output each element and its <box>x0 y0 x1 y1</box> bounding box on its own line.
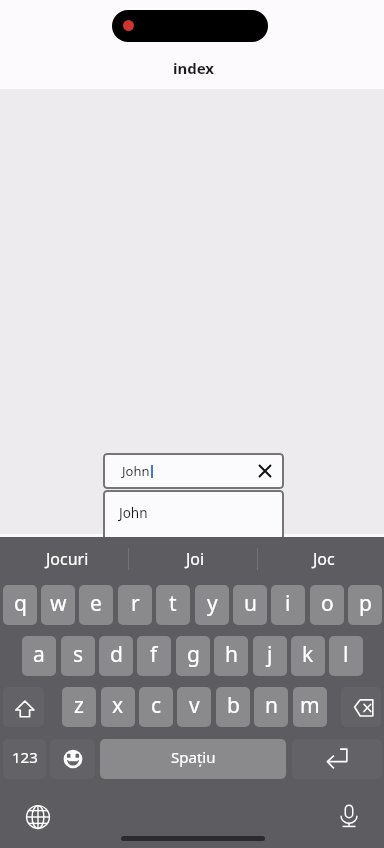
button[interactable]: Change keyboard <box>25 804 50 829</box>
button[interactable]: h <box>214 636 248 676</box>
button[interactable]: p <box>348 585 382 625</box>
staticText: x <box>112 691 124 720</box>
staticText: a <box>33 640 45 669</box>
button[interactable]: s <box>61 636 95 676</box>
button[interactable]: j <box>253 636 287 676</box>
button[interactable]: k <box>291 636 325 676</box>
button[interactable]: g <box>176 636 210 676</box>
staticText: f <box>150 640 158 669</box>
staticText: k <box>302 640 314 669</box>
staticText: h <box>225 640 238 669</box>
button[interactable]: v <box>177 687 211 727</box>
button[interactable]: y <box>195 585 229 625</box>
staticText: d <box>110 640 123 669</box>
button[interactable]: i <box>271 585 305 625</box>
staticText: z <box>74 691 84 720</box>
button[interactable]: n <box>254 687 288 727</box>
button[interactable]: Jocuri <box>0 537 128 582</box>
button[interactable]: Joi <box>128 537 257 582</box>
staticText: m <box>300 691 320 720</box>
staticText: i <box>285 589 291 618</box>
staticText: index <box>173 58 215 78</box>
staticText: y <box>207 589 218 618</box>
staticText: John <box>119 504 148 522</box>
staticText: John <box>122 462 150 480</box>
staticText: Joi <box>186 548 205 570</box>
button[interactable]: q <box>3 585 37 625</box>
staticText: l <box>343 640 349 669</box>
button[interactable]: t <box>156 585 190 625</box>
staticText: 123 <box>12 747 38 767</box>
staticText: t <box>169 589 177 618</box>
button[interactable]: o <box>310 585 344 625</box>
staticText: Spațiu <box>171 747 216 767</box>
staticText: v <box>189 691 200 720</box>
staticText: n <box>265 691 278 720</box>
staticText: b <box>227 691 240 720</box>
button[interactable]: Enter <box>292 739 382 779</box>
button[interactable]: John <box>103 453 284 489</box>
staticText: p <box>359 589 372 618</box>
button[interactable]: m <box>293 687 327 727</box>
button[interactable]: z <box>62 687 96 727</box>
button[interactable]: e <box>79 585 113 625</box>
button[interactable]: Shift <box>3 687 44 727</box>
button[interactable]: Backspace <box>341 687 381 727</box>
button[interactable]: c <box>139 687 173 727</box>
staticText: j <box>267 640 273 669</box>
button[interactable]: u <box>233 585 267 625</box>
button[interactable]: f <box>137 636 171 676</box>
button[interactable]: Clear text <box>254 460 276 482</box>
staticText: c <box>151 691 162 720</box>
button[interactable]: a <box>22 636 56 676</box>
staticText: q <box>14 589 27 618</box>
button[interactable]: x <box>101 687 135 727</box>
staticText: Jocuri <box>46 548 89 570</box>
staticText: Joc <box>313 548 335 570</box>
button[interactable]: Spațiu <box>100 739 286 779</box>
button[interactable]: d <box>99 636 133 676</box>
staticText: o <box>321 589 334 618</box>
button[interactable]: Joc <box>257 537 384 582</box>
button[interactable]: b <box>216 687 250 727</box>
button[interactable]: Emoji <box>50 739 95 779</box>
button[interactable]: 123 <box>3 739 46 779</box>
staticText: r <box>131 589 140 618</box>
staticText: u <box>244 589 257 618</box>
staticText: w <box>50 589 67 618</box>
staticText: s <box>73 640 84 669</box>
button[interactable]: Voice input <box>336 803 361 828</box>
button[interactable]: r <box>118 585 152 625</box>
button[interactable]: l <box>329 636 363 676</box>
staticText: e <box>90 589 102 618</box>
button[interactable]: w <box>41 585 75 625</box>
staticText: g <box>187 640 200 669</box>
button[interactable]: John <box>103 490 284 560</box>
